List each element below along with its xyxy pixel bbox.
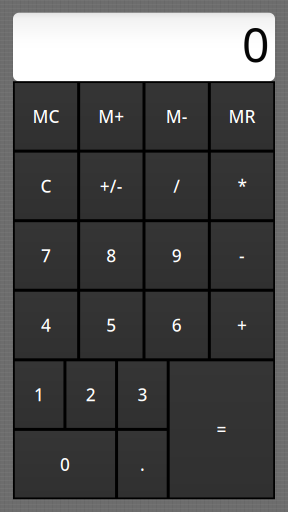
- staticText: 0: [242, 12, 269, 76]
- staticText: 6: [172, 313, 182, 336]
- staticText: 4: [41, 313, 51, 336]
- button[interactable]: 0: [15, 431, 115, 497]
- staticText: /: [173, 174, 180, 197]
- button[interactable]: 1: [15, 361, 63, 428]
- button[interactable]: .: [118, 431, 167, 497]
- staticText: 0: [60, 453, 70, 476]
- button[interactable]: +/-: [80, 153, 142, 219]
- staticText: 5: [106, 313, 116, 336]
- button[interactable]: 7: [15, 222, 77, 289]
- button[interactable]: 3: [118, 361, 167, 428]
- button[interactable]: M+: [80, 83, 142, 150]
- button[interactable]: 2: [66, 361, 115, 428]
- staticText: MR: [228, 105, 255, 128]
- staticText: 8: [106, 244, 116, 267]
- staticText: .: [140, 453, 145, 476]
- button[interactable]: -: [211, 222, 273, 289]
- staticText: M+: [98, 105, 124, 128]
- staticText: -: [239, 244, 245, 267]
- staticText: 3: [137, 383, 147, 406]
- button[interactable]: 5: [80, 292, 142, 358]
- staticText: +: [237, 313, 247, 336]
- staticText: M-: [166, 105, 188, 128]
- button[interactable]: MC: [15, 83, 77, 150]
- button[interactable]: *: [211, 153, 273, 219]
- staticText: *: [237, 174, 246, 197]
- button[interactable]: 9: [145, 222, 208, 289]
- staticText: =: [216, 418, 226, 441]
- staticText: 7: [41, 244, 51, 267]
- staticText: C: [40, 174, 51, 197]
- staticText: 9: [172, 244, 182, 267]
- staticText: 2: [86, 383, 96, 406]
- button[interactable]: M-: [145, 83, 208, 150]
- button[interactable]: C: [15, 153, 77, 219]
- button[interactable]: 6: [145, 292, 208, 358]
- button[interactable]: =: [170, 361, 273, 497]
- staticText: +/-: [100, 174, 123, 197]
- staticText: MC: [32, 105, 59, 128]
- button[interactable]: +: [211, 292, 273, 358]
- staticText: 1: [34, 383, 44, 406]
- button[interactable]: MR: [211, 83, 273, 150]
- button[interactable]: 4: [15, 292, 77, 358]
- button[interactable]: 8: [80, 222, 142, 289]
- button[interactable]: /: [145, 153, 208, 219]
